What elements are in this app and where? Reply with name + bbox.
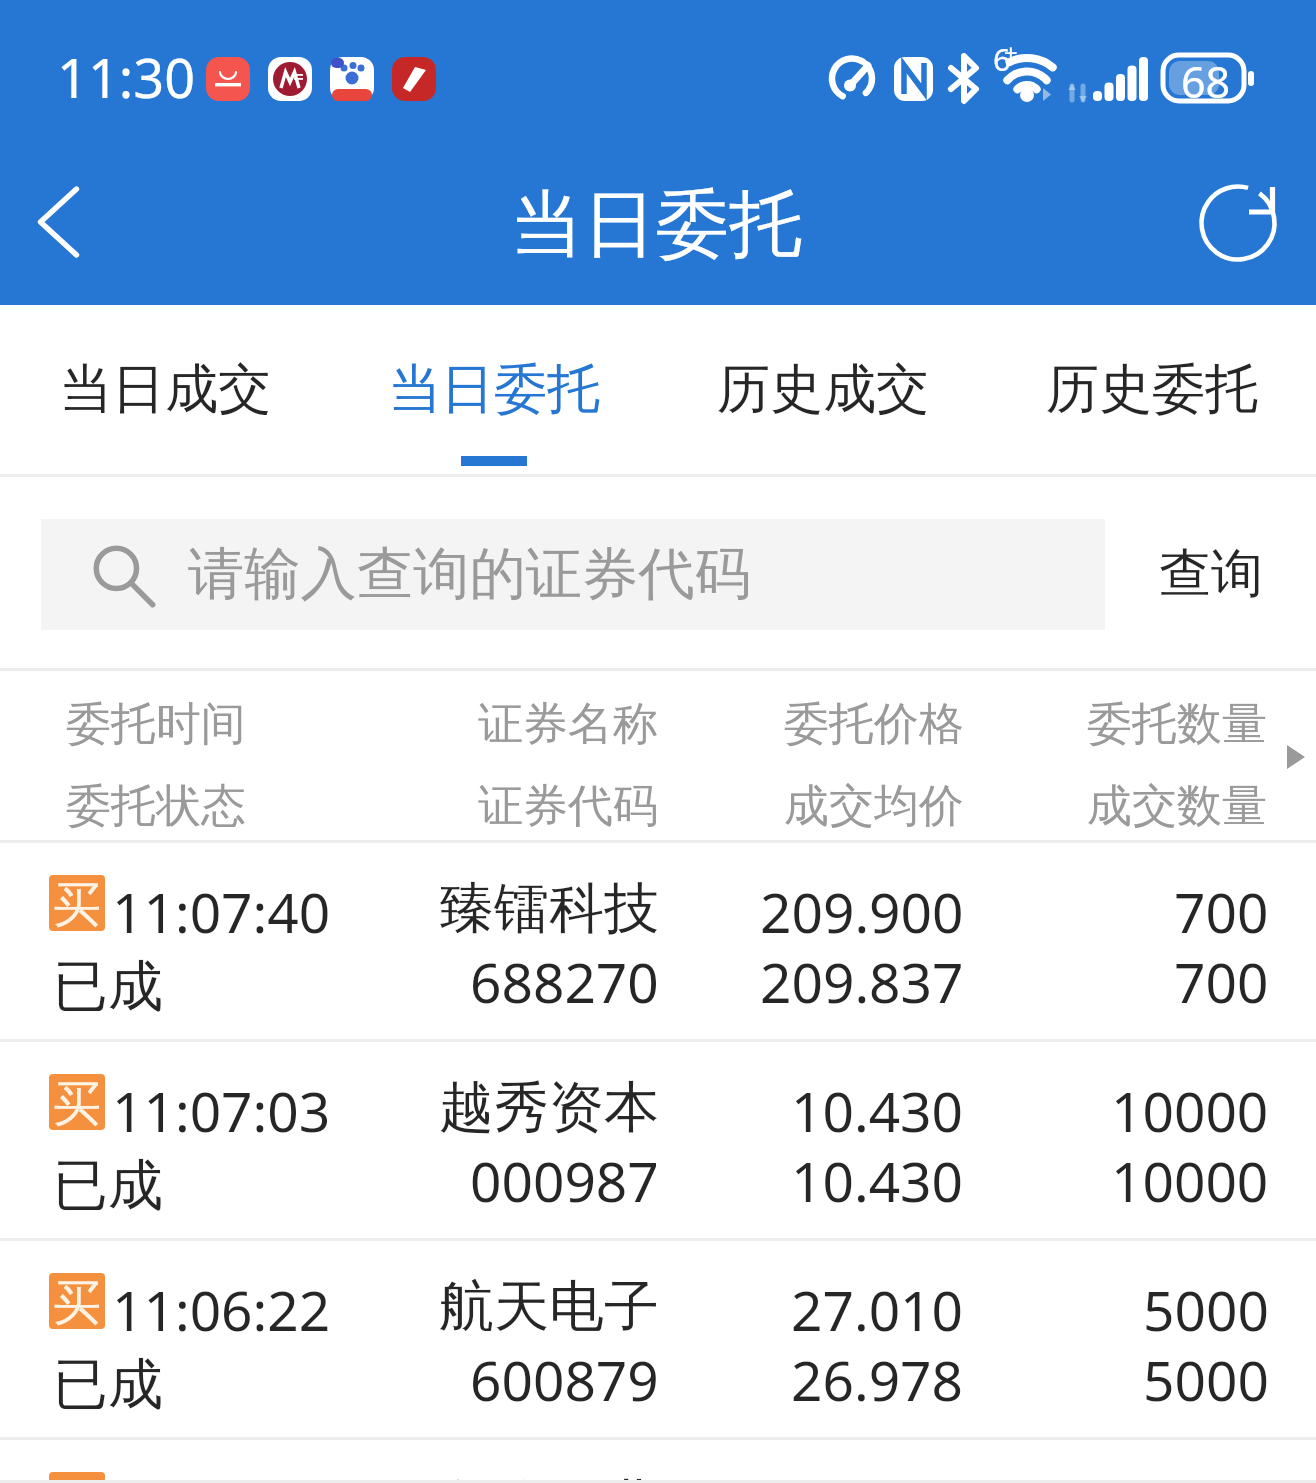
staticText: 11:30 (57, 40, 196, 114)
button[interactable]: Scroll right (1276, 717, 1316, 797)
staticText: 证券代码 (478, 778, 658, 835)
button[interactable]: Refresh (1190, 160, 1290, 284)
staticText: 11:06:22 (112, 1272, 331, 1347)
staticText: 当日成交 (59, 356, 271, 423)
staticText: 已成 (53, 1151, 163, 1220)
staticText: 10000 (1111, 1073, 1269, 1148)
staticText: 成交数量 (1087, 778, 1267, 835)
staticText: 11:07:03 (112, 1073, 331, 1148)
staticText: 委托状态 (66, 778, 246, 835)
staticText: 历史委托 (1046, 356, 1258, 423)
staticText: 委托数量 (1087, 696, 1267, 753)
staticText: 000987 (470, 1143, 659, 1218)
staticText: 10.430 (791, 1073, 964, 1148)
staticText: 26.978 (791, 1342, 964, 1417)
staticText: 委托价格 (784, 696, 964, 753)
staticText: 3000 (1143, 1471, 1269, 1483)
staticText: 当日委托 (388, 356, 600, 423)
staticText: 5000 (1143, 1272, 1269, 1347)
staticText: 11.110 (791, 1471, 964, 1483)
staticText: 臻镭科技 (439, 874, 659, 943)
staticText: 688270 (470, 944, 659, 1019)
staticText: 华峰铝业 (439, 1471, 659, 1483)
button[interactable]: 当日委托 (329, 305, 658, 477)
staticText: 买 (53, 1074, 101, 1130)
staticText: 越秀资本 (439, 1073, 659, 1142)
button[interactable]: 查询 (1105, 477, 1316, 671)
button[interactable]: 买 (0, 843, 1316, 1042)
staticText: 航天电子 (439, 1272, 659, 1341)
staticText: 10000 (1111, 1143, 1269, 1218)
staticText: 当日委托 (510, 179, 802, 271)
staticText: 证券名称 (478, 696, 658, 753)
staticText: 委托时间 (66, 696, 246, 753)
staticText: 已成 (53, 952, 163, 1021)
staticText: 请输入查询的证券代码 (188, 539, 751, 610)
staticText: 买 (53, 1472, 101, 1483)
staticText: 700 (1174, 944, 1269, 1019)
staticText: 09:51:00 (112, 1471, 331, 1483)
button[interactable]: Back (8, 152, 108, 292)
staticText: 27.010 (791, 1272, 964, 1347)
button[interactable]: 历史委托 (987, 305, 1316, 477)
button[interactable]: 当日成交 (0, 305, 329, 477)
button[interactable]: 买 (0, 1042, 1316, 1241)
staticText: 11:07:40 (112, 874, 331, 949)
button[interactable]: 买 (0, 1440, 1316, 1483)
staticText: 已成 (53, 1350, 163, 1419)
button[interactable]: Search securities code (41, 519, 1105, 630)
staticText: 5000 (1143, 1342, 1269, 1417)
staticText: 6 (993, 38, 1011, 80)
staticText: + (1004, 36, 1018, 69)
button[interactable]: 历史成交 (658, 305, 987, 477)
staticText: 209.900 (760, 874, 964, 949)
staticText: 600879 (470, 1342, 659, 1417)
staticText: 68 (1181, 52, 1231, 111)
staticText: 买 (53, 1273, 101, 1329)
staticText: 买 (53, 875, 101, 931)
staticText: 查询 (1159, 541, 1263, 607)
staticText: 历史成交 (717, 356, 929, 423)
staticText: 209.837 (760, 944, 964, 1019)
button[interactable]: 买 (0, 1241, 1316, 1440)
staticText: 700 (1174, 874, 1269, 949)
staticText: 10.430 (791, 1143, 964, 1218)
staticText: 成交均价 (784, 778, 964, 835)
